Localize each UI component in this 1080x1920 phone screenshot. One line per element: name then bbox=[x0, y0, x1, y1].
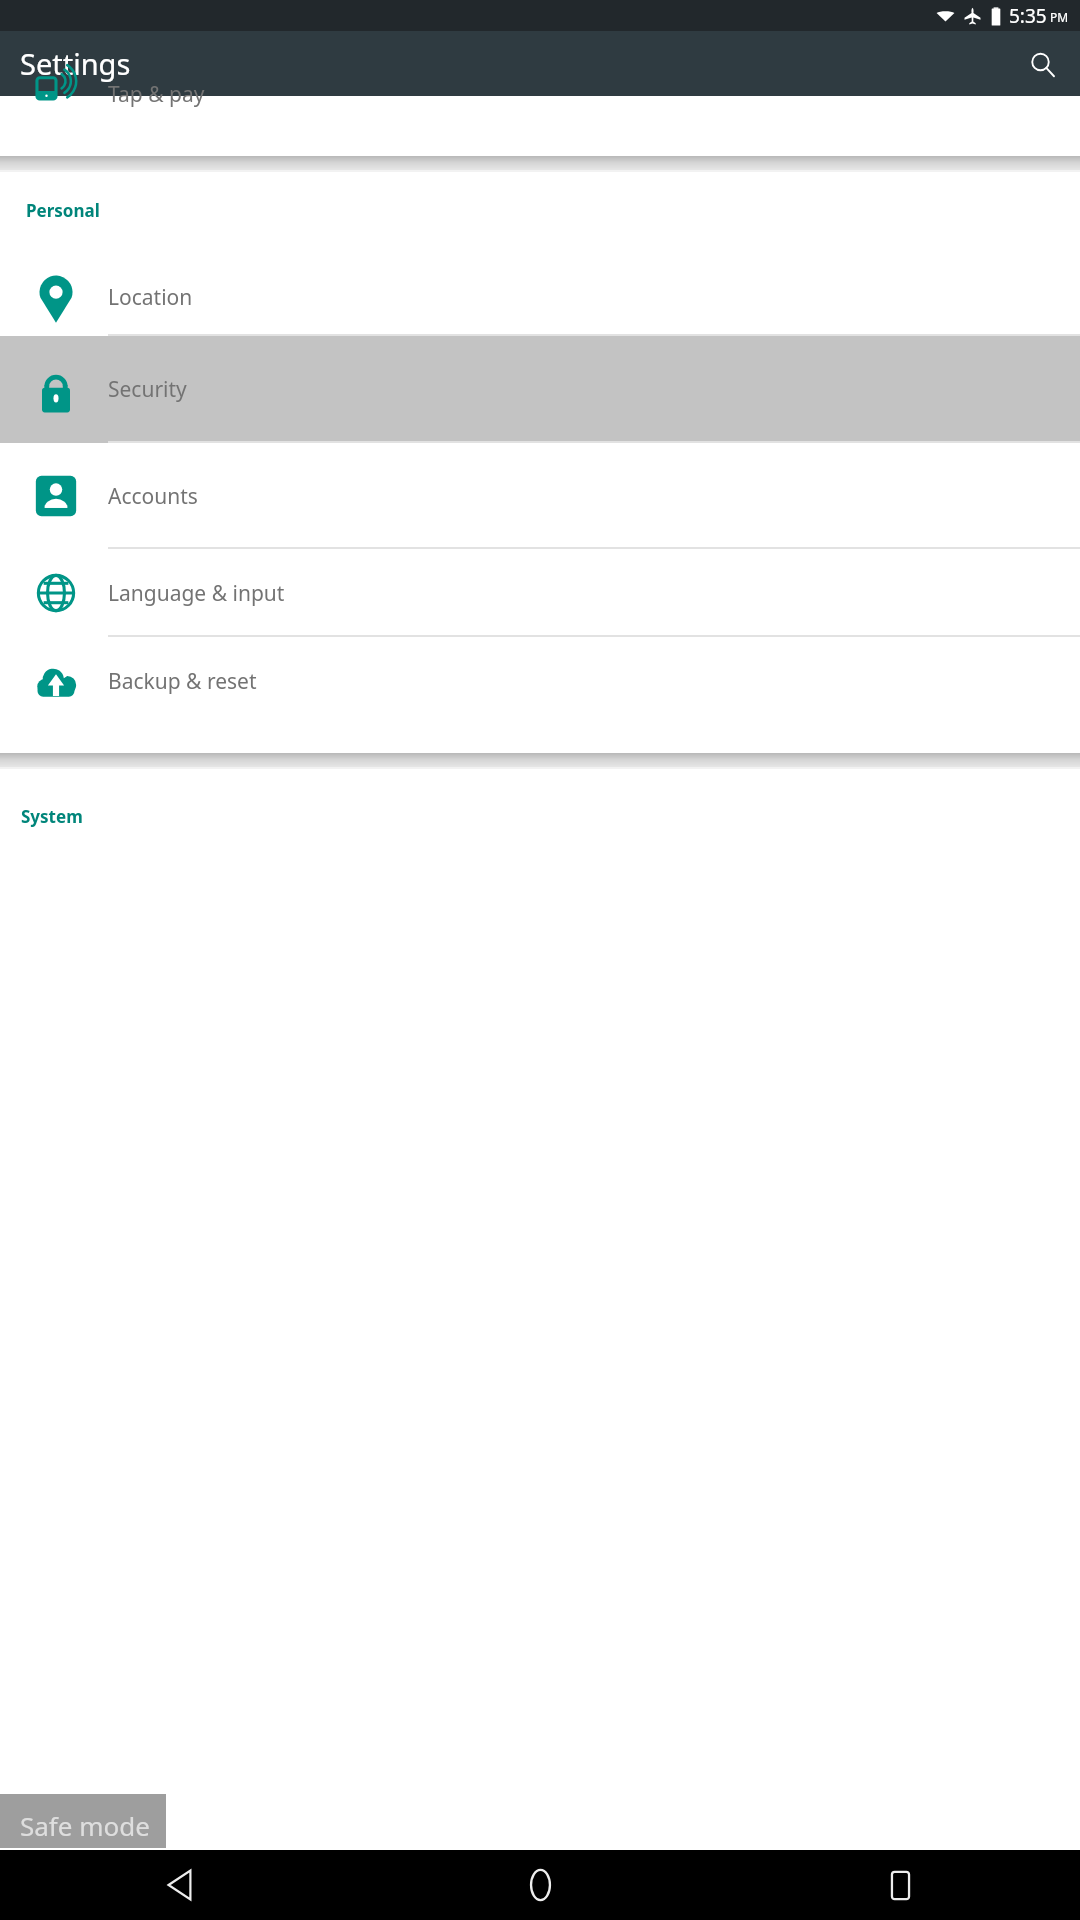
staticText: Safe mode bbox=[20, 1808, 150, 1843]
button[interactable]: Search bbox=[1018, 40, 1066, 88]
staticText: Personal bbox=[26, 199, 100, 222]
staticText: System bbox=[21, 805, 83, 828]
staticText: Settings bbox=[20, 44, 131, 83]
staticText: Backup & reset bbox=[108, 667, 257, 696]
button[interactable]: Recent apps bbox=[720, 1850, 1080, 1920]
button[interactable]: Backup & reset bbox=[0, 637, 1080, 725]
staticText: 5:35 bbox=[1009, 3, 1047, 29]
staticText: Language & input bbox=[108, 579, 285, 608]
staticText: PM bbox=[1050, 9, 1069, 25]
button[interactable]: Location bbox=[0, 259, 1080, 336]
button[interactable]: Home bbox=[360, 1850, 720, 1920]
staticText: Tap & pay bbox=[108, 80, 205, 109]
button[interactable]: Language & input bbox=[0, 549, 1080, 637]
staticText: Location bbox=[108, 283, 193, 312]
button[interactable]: Tap & pay bbox=[0, 96, 1080, 134]
staticText: Accounts bbox=[108, 482, 198, 511]
button[interactable]: Security bbox=[0, 336, 1080, 443]
staticText: Security bbox=[108, 375, 187, 404]
button[interactable]: Accounts bbox=[0, 443, 1080, 549]
button[interactable]: Back bbox=[0, 1850, 360, 1920]
